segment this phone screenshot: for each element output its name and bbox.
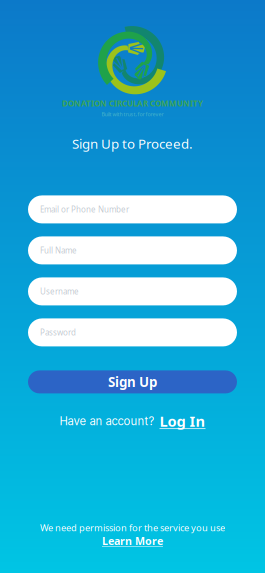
staticText: Email or Phone Number bbox=[40, 204, 129, 215]
staticText: Password bbox=[40, 327, 76, 338]
staticText: Built with trust, for forever bbox=[101, 111, 163, 118]
staticText: Sign Up to Proceed. bbox=[72, 135, 193, 152]
staticText: Log In bbox=[159, 411, 205, 431]
staticText: Learn More bbox=[102, 534, 163, 548]
staticText: DONATION CIRCULAR COMMUNITY bbox=[62, 98, 203, 109]
button[interactable]: Full Name bbox=[28, 236, 237, 264]
staticText: We need permission for the service you u… bbox=[40, 521, 225, 534]
staticText: Sign Up bbox=[108, 373, 157, 391]
button[interactable]: Email or Phone Number bbox=[28, 195, 237, 223]
staticText: Have an account? bbox=[59, 414, 154, 428]
staticText: Username bbox=[40, 286, 79, 297]
button[interactable]: Username bbox=[28, 277, 237, 305]
button[interactable]: Sign Up bbox=[28, 370, 237, 393]
staticText: Full Name bbox=[40, 245, 77, 256]
button[interactable]: Log In bbox=[159, 411, 205, 431]
button[interactable]: Password bbox=[28, 318, 237, 346]
button[interactable]: Learn More bbox=[102, 534, 163, 548]
